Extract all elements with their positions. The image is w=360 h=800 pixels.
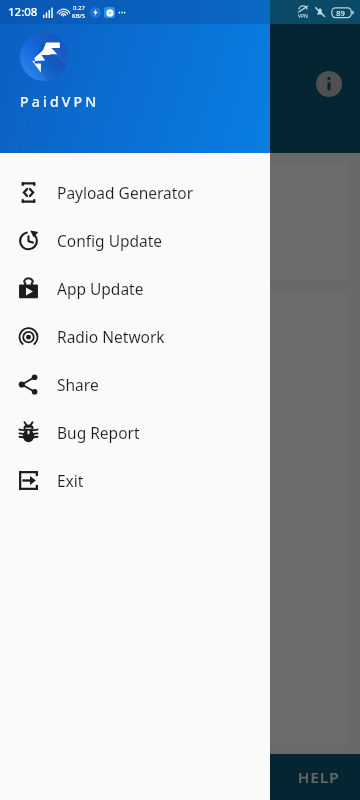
- button[interactable]: Bug Report: [0, 408, 270, 456]
- staticText: 0.27: [73, 4, 85, 12]
- staticText: Share: [57, 374, 99, 395]
- button[interactable]: HELP: [298, 754, 340, 800]
- button[interactable]: Share: [0, 360, 270, 408]
- button[interactable]: Radio Network: [0, 312, 270, 360]
- staticText: Bug Report: [57, 422, 140, 443]
- staticText: Payload Generator: [57, 182, 194, 203]
- staticText: Radio Network: [57, 326, 165, 347]
- button[interactable]: App Update: [0, 264, 270, 312]
- staticText: NOTE: NO TORRENTING and file sharing,: [25, 309, 182, 349]
- staticText: KB/S: [72, 12, 86, 20]
- staticText: 12:08: [8, 4, 38, 20]
- staticText: App Update: [57, 278, 144, 299]
- staticText: 89: [336, 8, 345, 18]
- button[interactable]: Config Update: [0, 216, 270, 264]
- staticText: Config Update: [57, 230, 163, 251]
- button[interactable]: Payload Generator: [0, 168, 270, 216]
- staticText: ···: [118, 5, 127, 19]
- staticText: PaidVPN: [20, 92, 100, 111]
- staticText: (IF YOU LIKE THE JOB) our payment site f…: [25, 397, 194, 437]
- staticText: VPN: [298, 13, 308, 20]
- button[interactable]: Info: [312, 67, 346, 101]
- staticText: Help us to keep it affordable: [25, 479, 212, 498]
- button[interactable]: Exit: [0, 456, 270, 504]
- staticText: HELP: [298, 767, 340, 787]
- staticText: Exit: [57, 470, 84, 491]
